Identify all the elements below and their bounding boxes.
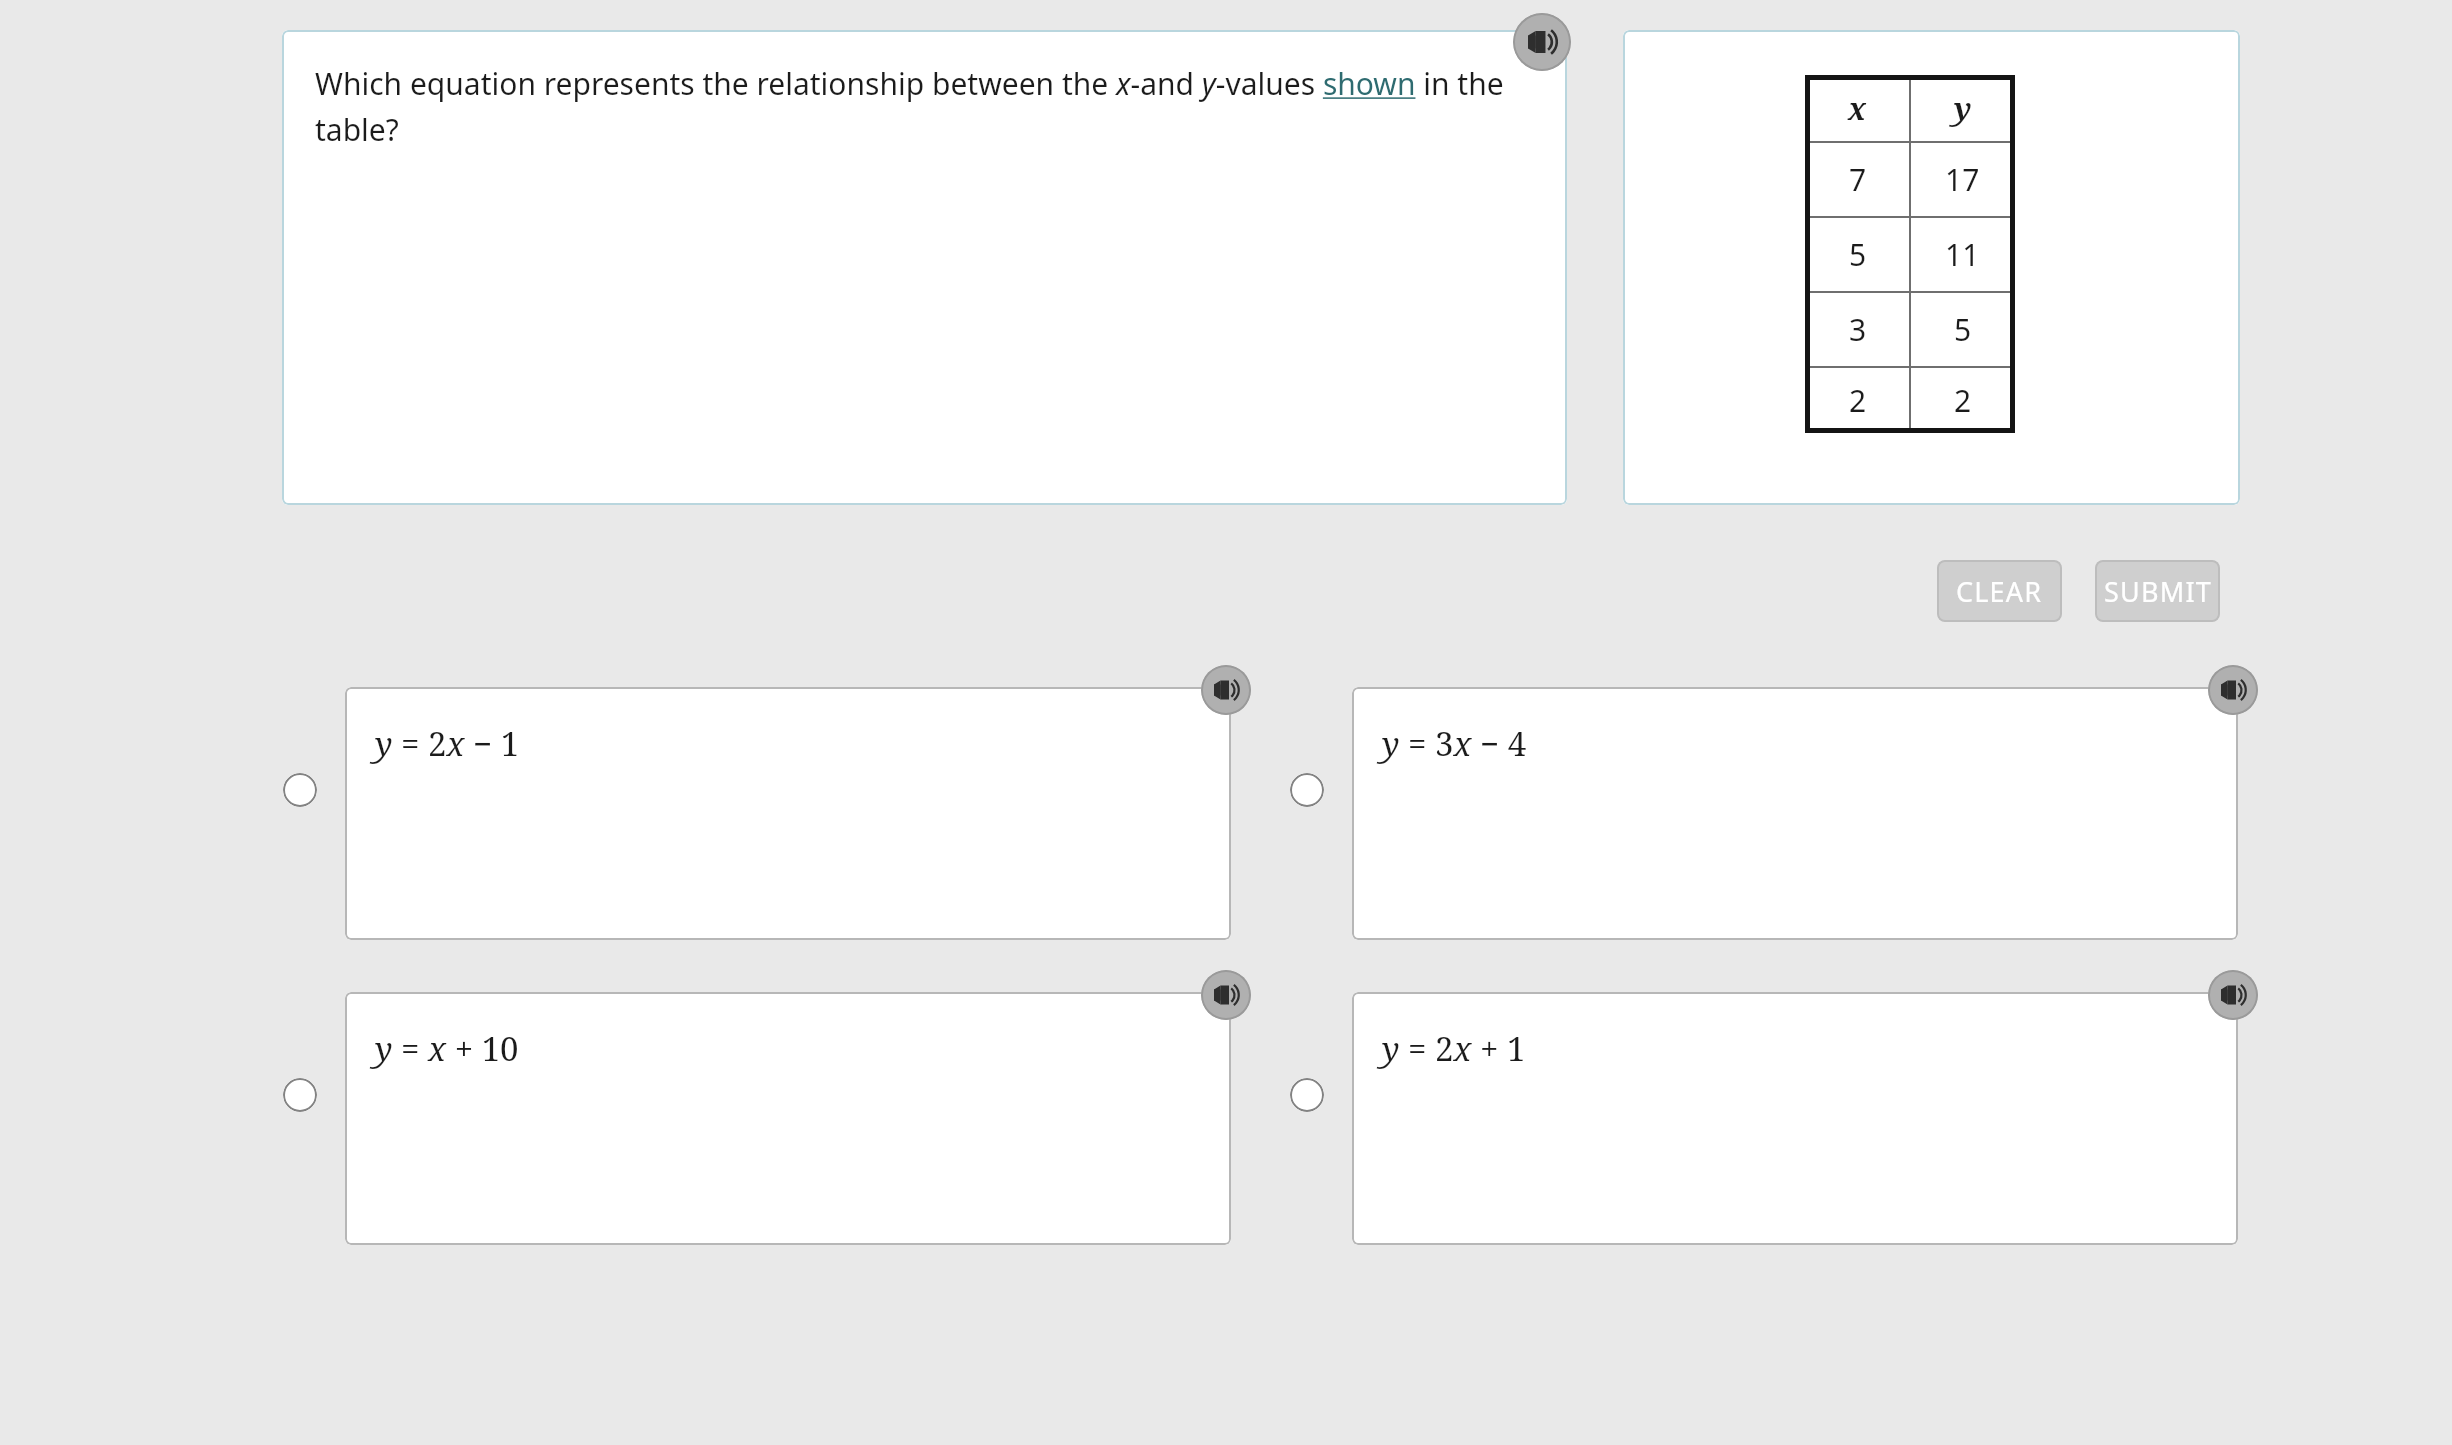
staticText: 5 — [1954, 309, 1972, 350]
button[interactable]: y = 2x + 1 — [1352, 992, 2238, 1245]
staticText: 5 — [1849, 234, 1867, 275]
staticText: 17 — [1945, 159, 1980, 200]
button[interactable]: Select answer y equals x plus 10 — [283, 1078, 317, 1112]
button[interactable]: Select answer y equals 3x minus 4 — [1290, 773, 1324, 807]
staticText: y = 3x − 4 — [1382, 721, 1527, 766]
button[interactable]: Read answer y equals 3x minus 4 aloud — [2208, 665, 2258, 715]
staticText: y = x + 10 — [375, 1026, 519, 1071]
staticText: CLEAR — [1956, 573, 2043, 610]
button[interactable]: SUBMIT — [2095, 560, 2220, 622]
staticText: x — [1848, 88, 1867, 129]
button[interactable]: Read answer y equals 2x plus 1 aloud — [2208, 970, 2258, 1020]
button[interactable]: Read question aloud — [1513, 13, 1571, 71]
button[interactable]: Select answer y equals 2x minus 1 — [283, 773, 317, 807]
staticText: y — [1954, 88, 1972, 129]
staticText: 2 — [1849, 380, 1867, 421]
staticText: 7 — [1849, 159, 1867, 200]
button[interactable]: Which equation represents the relationsh… — [282, 30, 1567, 505]
staticText: y = 2x + 1 — [1382, 1026, 1526, 1071]
staticText: 3 — [1849, 309, 1867, 350]
button[interactable]: Read answer y equals x plus 10 aloud — [1201, 970, 1251, 1020]
button[interactable]: y = 3x − 4 — [1352, 687, 2238, 940]
button[interactable]: Read answer y equals 2x minus 1 aloud — [1201, 665, 1251, 715]
staticText: 2 — [1954, 380, 1972, 421]
staticText: SUBMIT — [2104, 573, 2212, 610]
button[interactable]: Select answer y equals 2x plus 1 — [1290, 1078, 1324, 1112]
staticText: Which equation represents the relationsh… — [315, 63, 1507, 150]
button[interactable]: y = 2x − 1 — [345, 687, 1231, 940]
staticText: y = 2x − 1 — [375, 721, 520, 766]
staticText: 11 — [1945, 234, 1980, 275]
button[interactable]: CLEAR — [1937, 560, 2062, 622]
button[interactable]: y = x + 10 — [345, 992, 1231, 1245]
